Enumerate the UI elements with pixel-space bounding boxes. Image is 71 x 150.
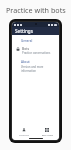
staticText: About — [21, 60, 30, 64]
button[interactable]: Settings — [12, 27, 59, 35]
staticText: Practice conversations — [22, 51, 51, 55]
button[interactable]: Bot Chats — [35, 126, 59, 137]
staticText: Bots — [22, 46, 30, 50]
staticText: Bot Chats — [42, 133, 53, 136]
other: Lock — [15, 46, 20, 51]
button[interactable]: Contacts — [12, 126, 35, 137]
staticText: Practice with bots — [6, 5, 66, 15]
staticText: General — [21, 39, 33, 43]
button[interactable]: Lock — [15, 46, 56, 55]
staticText: Contacts — [19, 133, 29, 136]
staticText: Settings — [15, 28, 33, 34]
staticText: Version and more information — [21, 65, 56, 73]
